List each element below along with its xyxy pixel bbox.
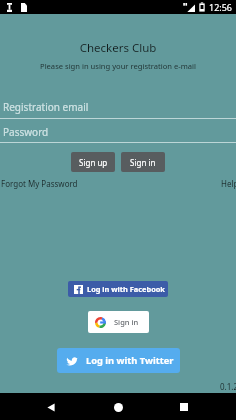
button[interactable]: Help [221,178,236,189]
staticText: 12:56 [209,1,233,13]
button[interactable]: Sign in [88,311,149,333]
staticText: Sign up [79,157,108,168]
button[interactable]: Home [105,394,131,420]
button[interactable]: Sign up [71,152,115,172]
staticText: Password [3,125,49,139]
staticText: Please sign in using your registration e… [0,61,236,71]
button[interactable]: Forgot My Password [0,178,78,189]
button[interactable]: Recents [171,394,197,420]
staticText: Registration email [3,100,89,114]
button[interactable]: Log in with Facebook [68,281,168,297]
staticText: Checkers Club [0,40,236,56]
button[interactable]: Log in with Twitter [57,348,180,373]
staticText: Sign in [130,157,156,168]
button[interactable]: Sign in [121,152,165,172]
button[interactable]: Registration email [0,100,236,114]
button[interactable]: Back [38,394,64,420]
staticText: Log in with Twitter [86,354,174,367]
staticText: Sign in [114,317,139,327]
staticText: Log in with Facebook [87,284,165,294]
button[interactable]: Password [0,125,236,139]
staticText: 0.1.2 [2,381,236,392]
